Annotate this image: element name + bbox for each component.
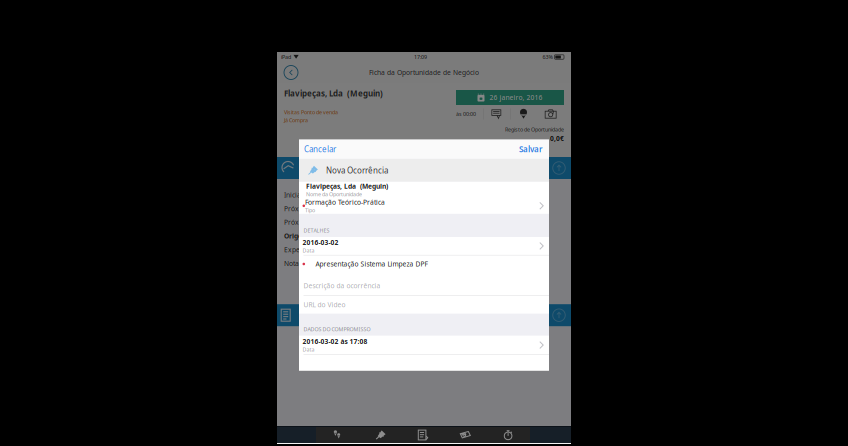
staticText: Já Compra — [284, 117, 308, 124]
button[interactable]: Back — [280, 62, 302, 82]
staticText: iPad — [281, 53, 291, 61]
staticText: Registo de Oportunidade — [505, 126, 564, 133]
button[interactable]: Timer — [487, 427, 530, 443]
button[interactable]: Notes — [483, 109, 510, 119]
button[interactable]: Formação Teórico-Prática — [299, 198, 549, 214]
staticText: 26 janeiro, 2016 — [489, 93, 542, 102]
button[interactable]: 2016-03-02 — [299, 237, 549, 255]
staticText: Iniciada em — [284, 190, 321, 199]
staticText: Salvar — [519, 144, 542, 154]
staticText: às 00:00 — [456, 110, 476, 118]
staticText: URL do Video — [303, 300, 345, 309]
staticText: 2016-03-02 — [302, 238, 338, 247]
staticText: Flavipeças, Lda (Meguin) — [284, 88, 383, 99]
staticText: Ficha da Oportunidade de Negócio — [369, 68, 479, 77]
button[interactable]: Expand — [552, 161, 566, 175]
button[interactable]: Salvar — [517, 139, 544, 159]
staticText: Descrição da ocorrência — [303, 281, 380, 290]
button[interactable]: Occurrences — [359, 427, 402, 443]
button[interactable]: Payments — [444, 427, 487, 443]
button[interactable]: 26 janeiro, 2016 — [456, 90, 564, 105]
button[interactable]: Expand — [552, 308, 566, 322]
staticText: Expectável — [284, 245, 318, 254]
staticText: 17:09 — [414, 53, 427, 61]
button[interactable]: Cancelar — [302, 139, 338, 159]
staticText: Próxima data — [284, 218, 327, 227]
button[interactable]: Flavipeças, Lda (Meguin) — [299, 182, 549, 198]
staticText: Data — [302, 247, 314, 254]
staticText: Notas — [284, 259, 302, 268]
staticText: 2016-03-02 às 17:08 — [302, 337, 367, 346]
staticText: Flavipeças, Lda (Meguin) — [306, 182, 388, 191]
staticText: Formação Teórico-Prática — [305, 198, 385, 207]
staticText: Tipo — [305, 207, 315, 214]
staticText: Data — [302, 346, 314, 353]
staticText: DADOS DO COMPROMISSO — [303, 325, 370, 333]
staticText: DETALHES — [303, 227, 329, 234]
staticText: 0,0€ — [550, 134, 564, 143]
button[interactable]: 2016-03-02 às 17:08 — [299, 336, 549, 354]
button[interactable]: Camera — [537, 109, 564, 119]
staticText: Origem — [284, 231, 309, 240]
button[interactable]: Location — [511, 108, 537, 119]
staticText: Próxima acção — [284, 204, 331, 213]
staticText: Apresentação Sistema Limpeza DPF — [316, 260, 428, 268]
button[interactable]: Visits — [316, 427, 359, 443]
button[interactable]: Documents — [402, 427, 444, 443]
staticText: 63% — [542, 53, 552, 61]
staticText: Visitas Ponto de venda — [284, 109, 338, 116]
staticText: Cancelar — [304, 144, 336, 154]
staticText: Nome da Oportunidade — [306, 191, 362, 198]
staticText: Nova Ocorrência — [326, 165, 388, 176]
